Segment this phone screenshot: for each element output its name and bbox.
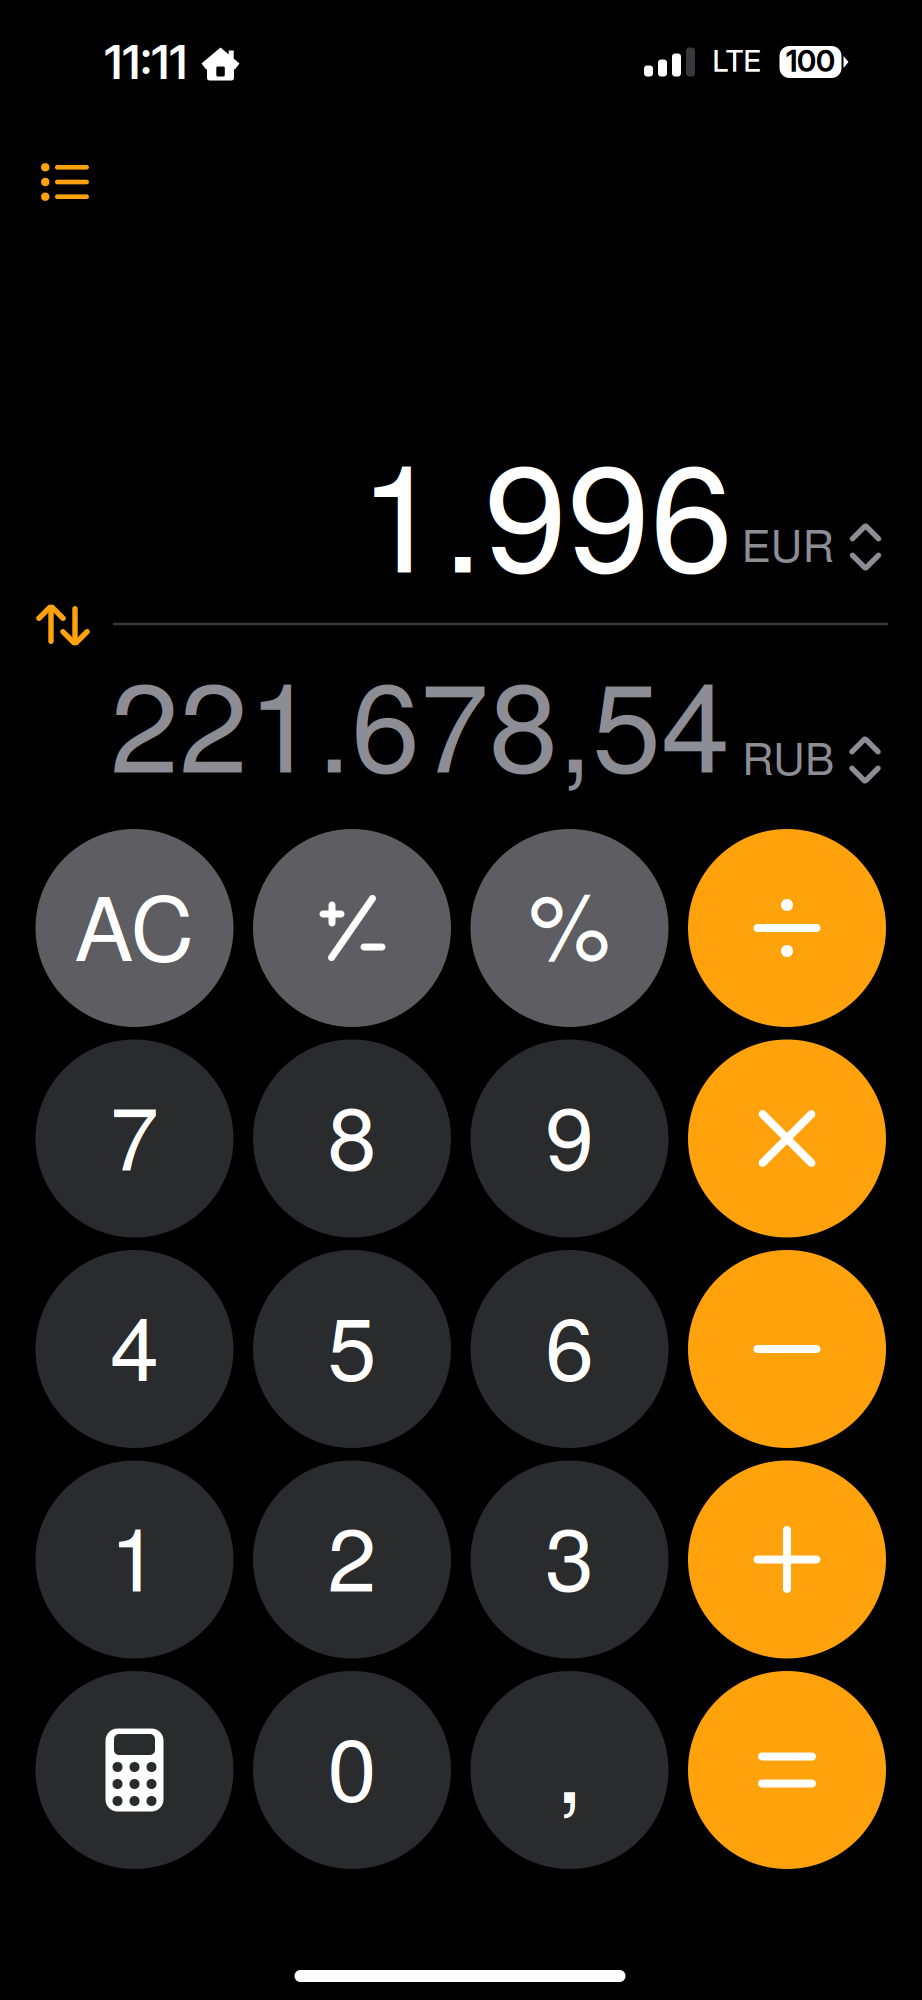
button[interactable]: 0 <box>253 1671 451 1869</box>
button[interactable]: Swap currencies <box>8 570 118 680</box>
button[interactable]: % <box>470 829 668 1027</box>
button[interactable]: 6 <box>470 1250 668 1448</box>
button[interactable]: Plus <box>688 1460 886 1658</box>
staticText: 4 <box>110 1280 159 1406</box>
button[interactable]: Currency list <box>5 127 125 237</box>
button[interactable]: Equals <box>688 1671 886 1869</box>
staticText: 9 <box>545 1069 594 1195</box>
button[interactable]: 8 <box>253 1039 451 1237</box>
button[interactable]: Calculator <box>35 1671 233 1869</box>
button[interactable]: 5 <box>253 1250 451 1448</box>
staticText: 100 <box>786 43 835 79</box>
staticText: 6 <box>545 1280 594 1406</box>
staticText: 2 <box>327 1490 376 1616</box>
staticText: LTE <box>712 43 760 79</box>
button[interactable]: Multiply <box>688 1039 886 1237</box>
button[interactable]: Minus <box>688 1250 886 1448</box>
button[interactable]: 3 <box>470 1460 668 1658</box>
staticText: 3 <box>545 1490 594 1616</box>
staticText: 1 <box>110 1490 159 1616</box>
button[interactable]: 1 <box>35 1460 233 1658</box>
button[interactable]: AC <box>35 829 233 1027</box>
button[interactable]: Divide <box>688 829 886 1027</box>
button[interactable]: , <box>470 1671 668 1869</box>
button[interactable]: Plus minus <box>253 829 451 1027</box>
staticText: % <box>528 854 610 986</box>
button[interactable]: 9 <box>470 1039 668 1237</box>
button[interactable]: 2 <box>253 1460 451 1658</box>
staticText: 1.996 <box>359 401 733 615</box>
staticText: 8 <box>327 1069 376 1195</box>
button[interactable]: Source currency EUR <box>741 507 882 587</box>
button[interactable]: 4 <box>35 1250 233 1448</box>
staticText: AC <box>74 860 194 986</box>
staticText: , <box>555 1683 584 1832</box>
staticText: EUR <box>741 511 834 574</box>
staticText: 5 <box>327 1280 376 1406</box>
staticText: 11:11 <box>104 34 187 90</box>
staticText: 221.678,54 <box>110 630 730 808</box>
button[interactable]: Amount 1.996 EUR <box>313 428 733 588</box>
button[interactable]: 7 <box>35 1039 233 1237</box>
staticText: 7 <box>110 1069 159 1195</box>
staticText: 0 <box>327 1701 376 1827</box>
button[interactable]: Target currency RUB <box>742 720 882 800</box>
staticText: RUB <box>742 724 834 787</box>
button[interactable]: Converted amount 221.678,54 RUB <box>50 644 730 794</box>
